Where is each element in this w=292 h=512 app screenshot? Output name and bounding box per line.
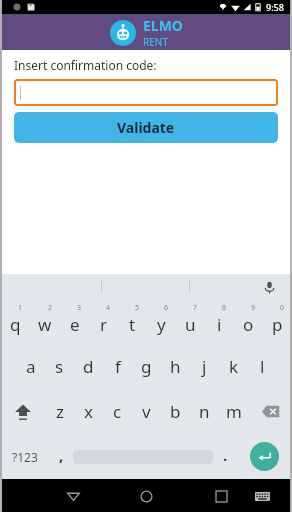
- button[interactable]: 6: [147, 299, 176, 344]
- button[interactable]: v: [132, 389, 161, 434]
- staticText: v: [142, 400, 151, 423]
- staticText: .: [223, 445, 228, 465]
- staticText: r: [100, 313, 108, 336]
- button[interactable]: d: [74, 344, 103, 389]
- button[interactable]: g: [132, 344, 161, 389]
- staticText: Insert confirmation code:: [14, 57, 157, 73]
- button[interactable]: l: [248, 344, 277, 389]
- button[interactable]: Recents: [208, 483, 234, 509]
- staticText: Validate: [117, 118, 175, 137]
- button[interactable]: Space: [73, 434, 213, 479]
- staticText: i: [217, 313, 222, 336]
- staticText: 7: [193, 303, 198, 313]
- staticText: 0: [280, 303, 285, 313]
- staticText: RENT: [143, 35, 168, 49]
- staticText: 5: [135, 303, 140, 313]
- staticText: ?123: [12, 449, 38, 465]
- staticText: 4: [106, 303, 111, 313]
- button[interactable]: 4: [89, 299, 118, 344]
- staticText: b: [170, 400, 181, 423]
- button[interactable]: 1: [0, 299, 30, 344]
- staticText: p: [272, 313, 283, 336]
- button[interactable]: Voice input: [260, 278, 278, 296]
- button[interactable]: 8: [205, 299, 234, 344]
- staticText: c: [113, 400, 122, 423]
- staticText: 9:58: [266, 1, 284, 13]
- button[interactable]: m: [219, 389, 248, 434]
- staticText: 1: [18, 303, 23, 313]
- staticText: o: [243, 313, 254, 336]
- staticText: d: [83, 355, 94, 378]
- button[interactable]: Validate: [14, 112, 278, 143]
- button[interactable]: j: [190, 344, 219, 389]
- staticText: z: [56, 400, 64, 423]
- button[interactable]: n: [190, 389, 219, 434]
- button[interactable]: Shift: [0, 389, 45, 434]
- button[interactable]: 0: [263, 299, 292, 344]
- staticText: 3: [77, 303, 82, 313]
- button[interactable]: ,: [49, 434, 73, 479]
- button[interactable]: 3: [60, 299, 89, 344]
- button[interactable]: Enter: [250, 442, 279, 471]
- staticText: w: [38, 313, 52, 336]
- staticText: ELMO: [143, 16, 183, 35]
- staticText: j: [202, 355, 207, 378]
- staticText: e: [70, 313, 80, 336]
- button[interactable]: f: [103, 344, 132, 389]
- button[interactable]: Back: [60, 483, 86, 509]
- button[interactable]: Backspace: [248, 389, 292, 434]
- button[interactable]: [14, 79, 278, 106]
- button[interactable]: x: [74, 389, 103, 434]
- staticText: q: [10, 313, 21, 336]
- staticText: ,: [59, 445, 64, 465]
- button[interactable]: b: [161, 389, 190, 434]
- staticText: g: [141, 355, 152, 378]
- staticText: f: [115, 355, 121, 378]
- staticText: l: [260, 355, 265, 378]
- button[interactable]: h: [161, 344, 190, 389]
- staticText: n: [199, 400, 210, 423]
- staticText: s: [55, 355, 64, 378]
- button[interactable]: z: [45, 389, 74, 434]
- staticText: k: [229, 355, 239, 378]
- staticText: h: [170, 355, 181, 378]
- staticText: 2: [48, 303, 53, 313]
- button[interactable]: 9: [234, 299, 263, 344]
- staticText: m: [226, 400, 242, 423]
- staticText: u: [185, 313, 196, 336]
- staticText: 9: [251, 303, 256, 313]
- staticText: a: [26, 355, 36, 378]
- button[interactable]: ?123: [0, 434, 49, 479]
- button[interactable]: 2: [30, 299, 60, 344]
- button[interactable]: c: [103, 389, 132, 434]
- button[interactable]: 7: [176, 299, 205, 344]
- staticText: y: [157, 313, 166, 336]
- staticText: x: [84, 400, 93, 423]
- staticText: t: [129, 313, 136, 336]
- button[interactable]: s: [45, 344, 74, 389]
- staticText: 8: [222, 303, 227, 313]
- button[interactable]: Home: [133, 483, 159, 509]
- button[interactable]: Switch keyboard: [249, 483, 275, 509]
- button[interactable]: .: [213, 434, 237, 479]
- button[interactable]: a: [16, 344, 45, 389]
- staticText: 6: [164, 303, 169, 313]
- button[interactable]: 5: [118, 299, 147, 344]
- button[interactable]: k: [219, 344, 248, 389]
